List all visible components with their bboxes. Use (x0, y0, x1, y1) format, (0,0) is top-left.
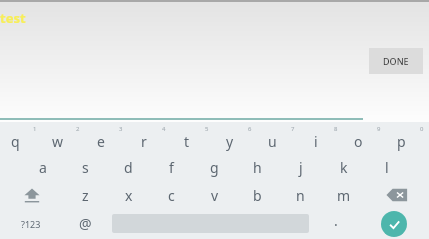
button[interactable]: d (107, 153, 150, 181)
button[interactable]: j (279, 153, 322, 181)
button[interactable]: @ (62, 209, 109, 238)
button[interactable]: l (365, 153, 408, 181)
button[interactable]: t (171, 125, 214, 153)
button[interactable]: f (150, 153, 193, 181)
button[interactable]: Backspace (365, 181, 429, 209)
staticText: 5 (205, 125, 209, 133)
staticText: y (226, 132, 234, 151)
staticText: p (397, 132, 406, 151)
staticText: m (337, 186, 351, 205)
staticText: c (168, 186, 175, 205)
staticText: 3 (119, 125, 123, 133)
button[interactable]: i (300, 125, 343, 153)
staticText: ?123 (21, 218, 41, 230)
staticText: s (82, 158, 89, 177)
staticText: 2 (76, 125, 80, 133)
staticText: DONE (383, 55, 409, 67)
staticText: g (210, 158, 219, 177)
staticText: e (97, 132, 105, 151)
button[interactable]: e (85, 125, 128, 153)
button[interactable]: h (236, 153, 279, 181)
staticText: q (11, 132, 20, 151)
button[interactable]: k (322, 153, 365, 181)
staticText: @ (79, 214, 92, 233)
button[interactable]: o (343, 125, 386, 153)
staticText: n (296, 186, 305, 205)
button[interactable]: a (21, 153, 64, 181)
staticText: z (82, 186, 89, 205)
staticText: 0 (420, 125, 424, 133)
staticText: . (334, 211, 338, 230)
button[interactable]: b (236, 181, 279, 209)
button[interactable]: ?123 (0, 209, 62, 238)
button[interactable]: y (214, 125, 257, 153)
staticText: i (314, 132, 318, 151)
staticText: 7 (291, 125, 295, 133)
button[interactable]: Shift (0, 181, 64, 209)
button[interactable]: u (257, 125, 300, 153)
staticText: b (253, 186, 262, 205)
staticText: d (124, 158, 133, 177)
staticText: v (211, 186, 219, 205)
staticText: a (39, 158, 47, 177)
staticText: 8 (334, 125, 338, 133)
button[interactable]: z (64, 181, 107, 209)
staticText: 4 (162, 125, 166, 133)
button[interactable]: DONE (369, 48, 423, 74)
staticText: w (52, 132, 64, 151)
button[interactable]: w (42, 125, 85, 153)
button[interactable]: s (64, 153, 107, 181)
staticText: 6 (248, 125, 252, 133)
staticText: l (385, 158, 389, 177)
staticText: 1 (33, 125, 37, 133)
button[interactable]: r (128, 125, 171, 153)
staticText: u (268, 132, 277, 151)
staticText: f (169, 158, 174, 177)
staticText: h (253, 158, 262, 177)
button[interactable]: p (386, 125, 429, 153)
staticText: 9 (377, 125, 381, 133)
staticText: x (125, 186, 133, 205)
staticText: r (141, 132, 147, 151)
staticText: t (184, 132, 190, 151)
button[interactable]: g (193, 153, 236, 181)
button[interactable]: c (150, 181, 193, 209)
button[interactable]: q (0, 125, 42, 153)
staticText: o (354, 132, 363, 151)
staticText: j (299, 158, 303, 177)
button[interactable]: x (107, 181, 150, 209)
button[interactable]: v (193, 181, 236, 209)
staticText: k (340, 158, 348, 177)
button[interactable]: m (322, 181, 365, 209)
staticText: test (0, 9, 26, 27)
button[interactable]: . (312, 209, 359, 238)
button[interactable]: Enter (381, 211, 407, 237)
button[interactable]: n (279, 181, 322, 209)
